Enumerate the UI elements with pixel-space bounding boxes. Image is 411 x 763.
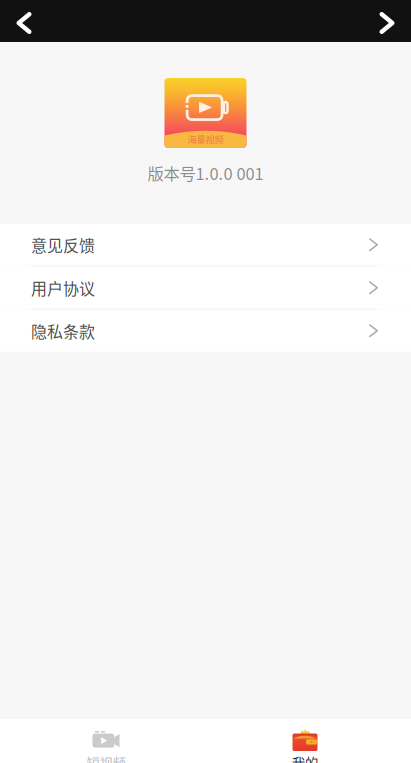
staticText: 我的	[292, 753, 318, 763]
button[interactable]: 隐私条款	[0, 310, 411, 352]
staticText: 短视频	[86, 753, 125, 763]
button[interactable]: 我的	[205, 719, 404, 763]
staticText: 海量视频	[187, 132, 223, 146]
staticText: 意见反馈	[31, 233, 95, 256]
button[interactable]: Forward	[366, 0, 408, 42]
button[interactable]: 意见反馈	[0, 224, 411, 266]
button[interactable]: Back	[3, 0, 45, 42]
button[interactable]: 用户协议	[0, 267, 411, 309]
button[interactable]: 短视频	[6, 719, 205, 763]
staticText: 用户协议	[31, 276, 95, 299]
staticText: 版本号1.0.0 001	[147, 161, 263, 185]
staticText: 隐私条款	[31, 319, 95, 342]
